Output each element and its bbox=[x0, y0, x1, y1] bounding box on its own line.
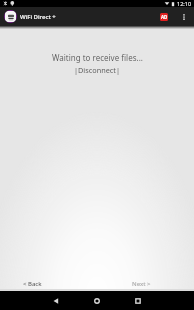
staticText: |Disconnect| bbox=[74, 65, 120, 75]
staticText: WiFi Direct + bbox=[20, 13, 56, 21]
staticText: Waiting to receive files... bbox=[52, 52, 143, 63]
button[interactable]: Ad bbox=[156, 9, 172, 25]
staticText: AD bbox=[161, 14, 168, 20]
button[interactable]: Next > bbox=[88, 279, 194, 289]
button[interactable]: |Disconnect| bbox=[69, 64, 125, 76]
button[interactable]: Home bbox=[86, 291, 108, 310]
button[interactable]: Back bbox=[45, 291, 67, 310]
staticText: < Back bbox=[23, 280, 42, 288]
button[interactable]: < Back bbox=[0, 279, 64, 289]
button[interactable]: Recents bbox=[127, 291, 149, 310]
staticText: 12:10 bbox=[177, 0, 192, 7]
button[interactable]: More options bbox=[177, 10, 191, 24]
staticText: Next > bbox=[132, 280, 151, 288]
